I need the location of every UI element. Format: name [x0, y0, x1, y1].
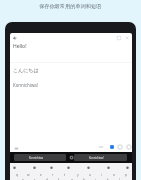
staticText: k [107, 178, 109, 180]
button[interactable]: Close [124, 35, 130, 41]
button[interactable]: Clipboard [69, 155, 74, 160]
button[interactable]: Saved [109, 144, 115, 150]
button[interactable]: Keyboard tool [12, 165, 17, 170]
button[interactable]: q [11, 172, 22, 177]
staticText: Konnichiwa [29, 156, 44, 160]
button[interactable]: Keyboard tool [66, 165, 71, 170]
button[interactable]: Keyboard tool [86, 165, 91, 170]
button[interactable]: r [47, 172, 58, 177]
button[interactable]: y [72, 172, 83, 177]
button[interactable]: Keyboard tool [125, 165, 130, 170]
button[interactable]: i [96, 172, 107, 177]
button[interactable]: Options [98, 144, 104, 150]
button[interactable]: u [84, 172, 95, 177]
button[interactable]: j [90, 177, 101, 180]
button[interactable]: Back [13, 35, 19, 41]
button[interactable]: p [120, 172, 131, 177]
staticText: q [16, 173, 18, 177]
staticText: Hello! [13, 43, 27, 50]
button[interactable]: Share [126, 144, 132, 150]
button[interactable]: Listen [14, 146, 19, 151]
staticText: h [83, 178, 85, 180]
button[interactable]: l [114, 177, 125, 180]
staticText: こんにちは [13, 67, 39, 73]
button[interactable]: Konnichiwa! [74, 154, 127, 161]
button[interactable]: k [102, 177, 113, 180]
staticText: 保存你最常用的单词和短语 [39, 3, 102, 10]
button[interactable]: Keyboard tool [49, 165, 54, 170]
staticText: f [58, 178, 60, 180]
button[interactable]: o [108, 172, 119, 177]
button[interactable]: f [53, 177, 64, 180]
button[interactable]: Copy translation [117, 144, 123, 150]
staticText: w [27, 173, 30, 177]
staticText: j [95, 178, 96, 180]
staticText: o [113, 173, 115, 177]
button[interactable]: Copy [116, 35, 122, 41]
button[interactable]: e [35, 172, 46, 177]
button[interactable]: Keyboard tool [32, 165, 37, 170]
button[interactable]: s [29, 177, 40, 180]
button[interactable]: t [59, 172, 70, 177]
staticText: Konnichiwa! [89, 156, 104, 160]
button[interactable]: w [23, 172, 34, 177]
staticText: p [125, 173, 127, 177]
button[interactable]: d [41, 177, 52, 180]
staticText: y [77, 173, 79, 177]
staticText: i [101, 173, 102, 177]
staticText: a [22, 178, 24, 180]
button[interactable]: Keyboard tool [106, 165, 111, 170]
staticText: d [46, 178, 48, 180]
staticText: g [71, 178, 73, 180]
staticText: u [89, 173, 91, 177]
staticText: s [34, 178, 36, 180]
staticText: r [52, 173, 54, 177]
button[interactable]: g [66, 177, 77, 180]
staticText: t [64, 173, 66, 177]
staticText: Konnichiwa! [13, 82, 38, 88]
button[interactable]: a [17, 177, 28, 180]
staticText: e [40, 173, 42, 177]
button[interactable]: h [78, 177, 89, 180]
button[interactable]: Konnichiwa [14, 154, 66, 161]
